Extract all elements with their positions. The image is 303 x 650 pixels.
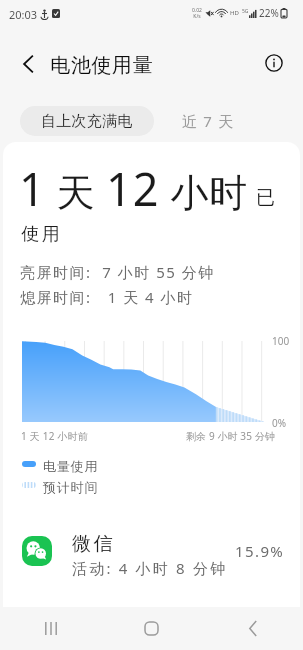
- staticText: 已: [256, 186, 275, 210]
- button[interactable]: Back: [202, 607, 303, 650]
- button[interactable]: 微信: [0, 524, 303, 580]
- staticText: 1 天 12 小时前: [21, 429, 88, 443]
- staticText: 0%: [272, 416, 287, 430]
- staticText: 微信: [71, 532, 114, 556]
- button[interactable]: Information: [262, 51, 286, 75]
- button[interactable]: Recent apps: [0, 607, 101, 650]
- staticText: 预计时间: [43, 479, 99, 495]
- button[interactable]: Home: [101, 607, 202, 650]
- staticText: 0.02 K/s: [192, 7, 202, 20]
- staticText: HD: [230, 9, 239, 17]
- button[interactable]: 自上次充满电: [20, 106, 154, 136]
- staticText: 亮屏时间: 7 小时 55 分钟: [20, 262, 215, 282]
- button[interactable]: 近 7 天: [154, 106, 263, 136]
- staticText: 近 7 天: [182, 111, 235, 131]
- staticText: 电量使用: [43, 458, 99, 474]
- staticText: 熄屏时间: 1 天 4 小时: [20, 287, 194, 307]
- staticText: 剩余 9 小时 35 分钟: [186, 429, 275, 443]
- staticText: 电池使用量: [50, 53, 153, 78]
- staticText: 自上次充满电: [41, 112, 133, 131]
- staticText: 使用: [20, 223, 61, 246]
- staticText: 活动: 4 小时 8 分钟: [72, 558, 228, 578]
- staticText: 15.9%: [235, 541, 285, 561]
- button[interactable]: Back: [16, 52, 40, 76]
- staticText: 20:03: [9, 7, 38, 22]
- staticText: 5G: [242, 8, 249, 15]
- staticText: 22%: [259, 6, 279, 20]
- staticText: 1 天 12 小时: [19, 158, 248, 219]
- staticText: 100: [272, 334, 290, 348]
